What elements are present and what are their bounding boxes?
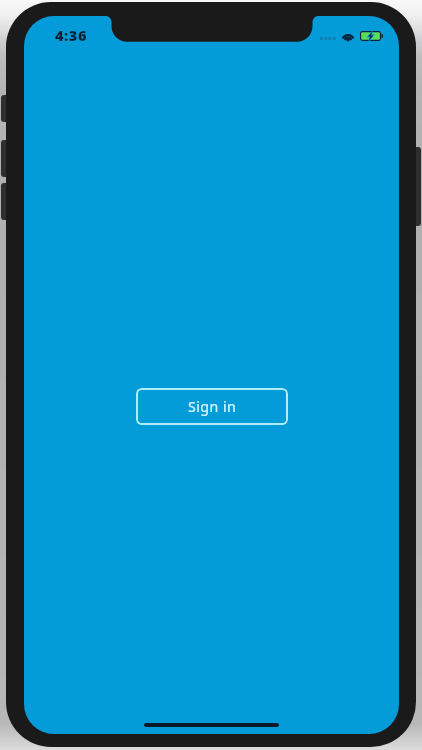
other: Home	[144, 723, 279, 727]
staticText: Sign in	[188, 397, 237, 416]
other: Power	[413, 147, 421, 226]
other: Volume down	[1, 183, 9, 220]
other: Cellular signal	[320, 37, 336, 40]
other: Volume up	[1, 140, 9, 177]
staticText: 4:36	[55, 25, 88, 45]
other: Battery charging	[360, 31, 383, 41]
other: Wi-Fi connected	[341, 31, 355, 41]
button[interactable]: Sign in	[136, 388, 288, 425]
other: Ring / silent switch	[1, 95, 9, 122]
